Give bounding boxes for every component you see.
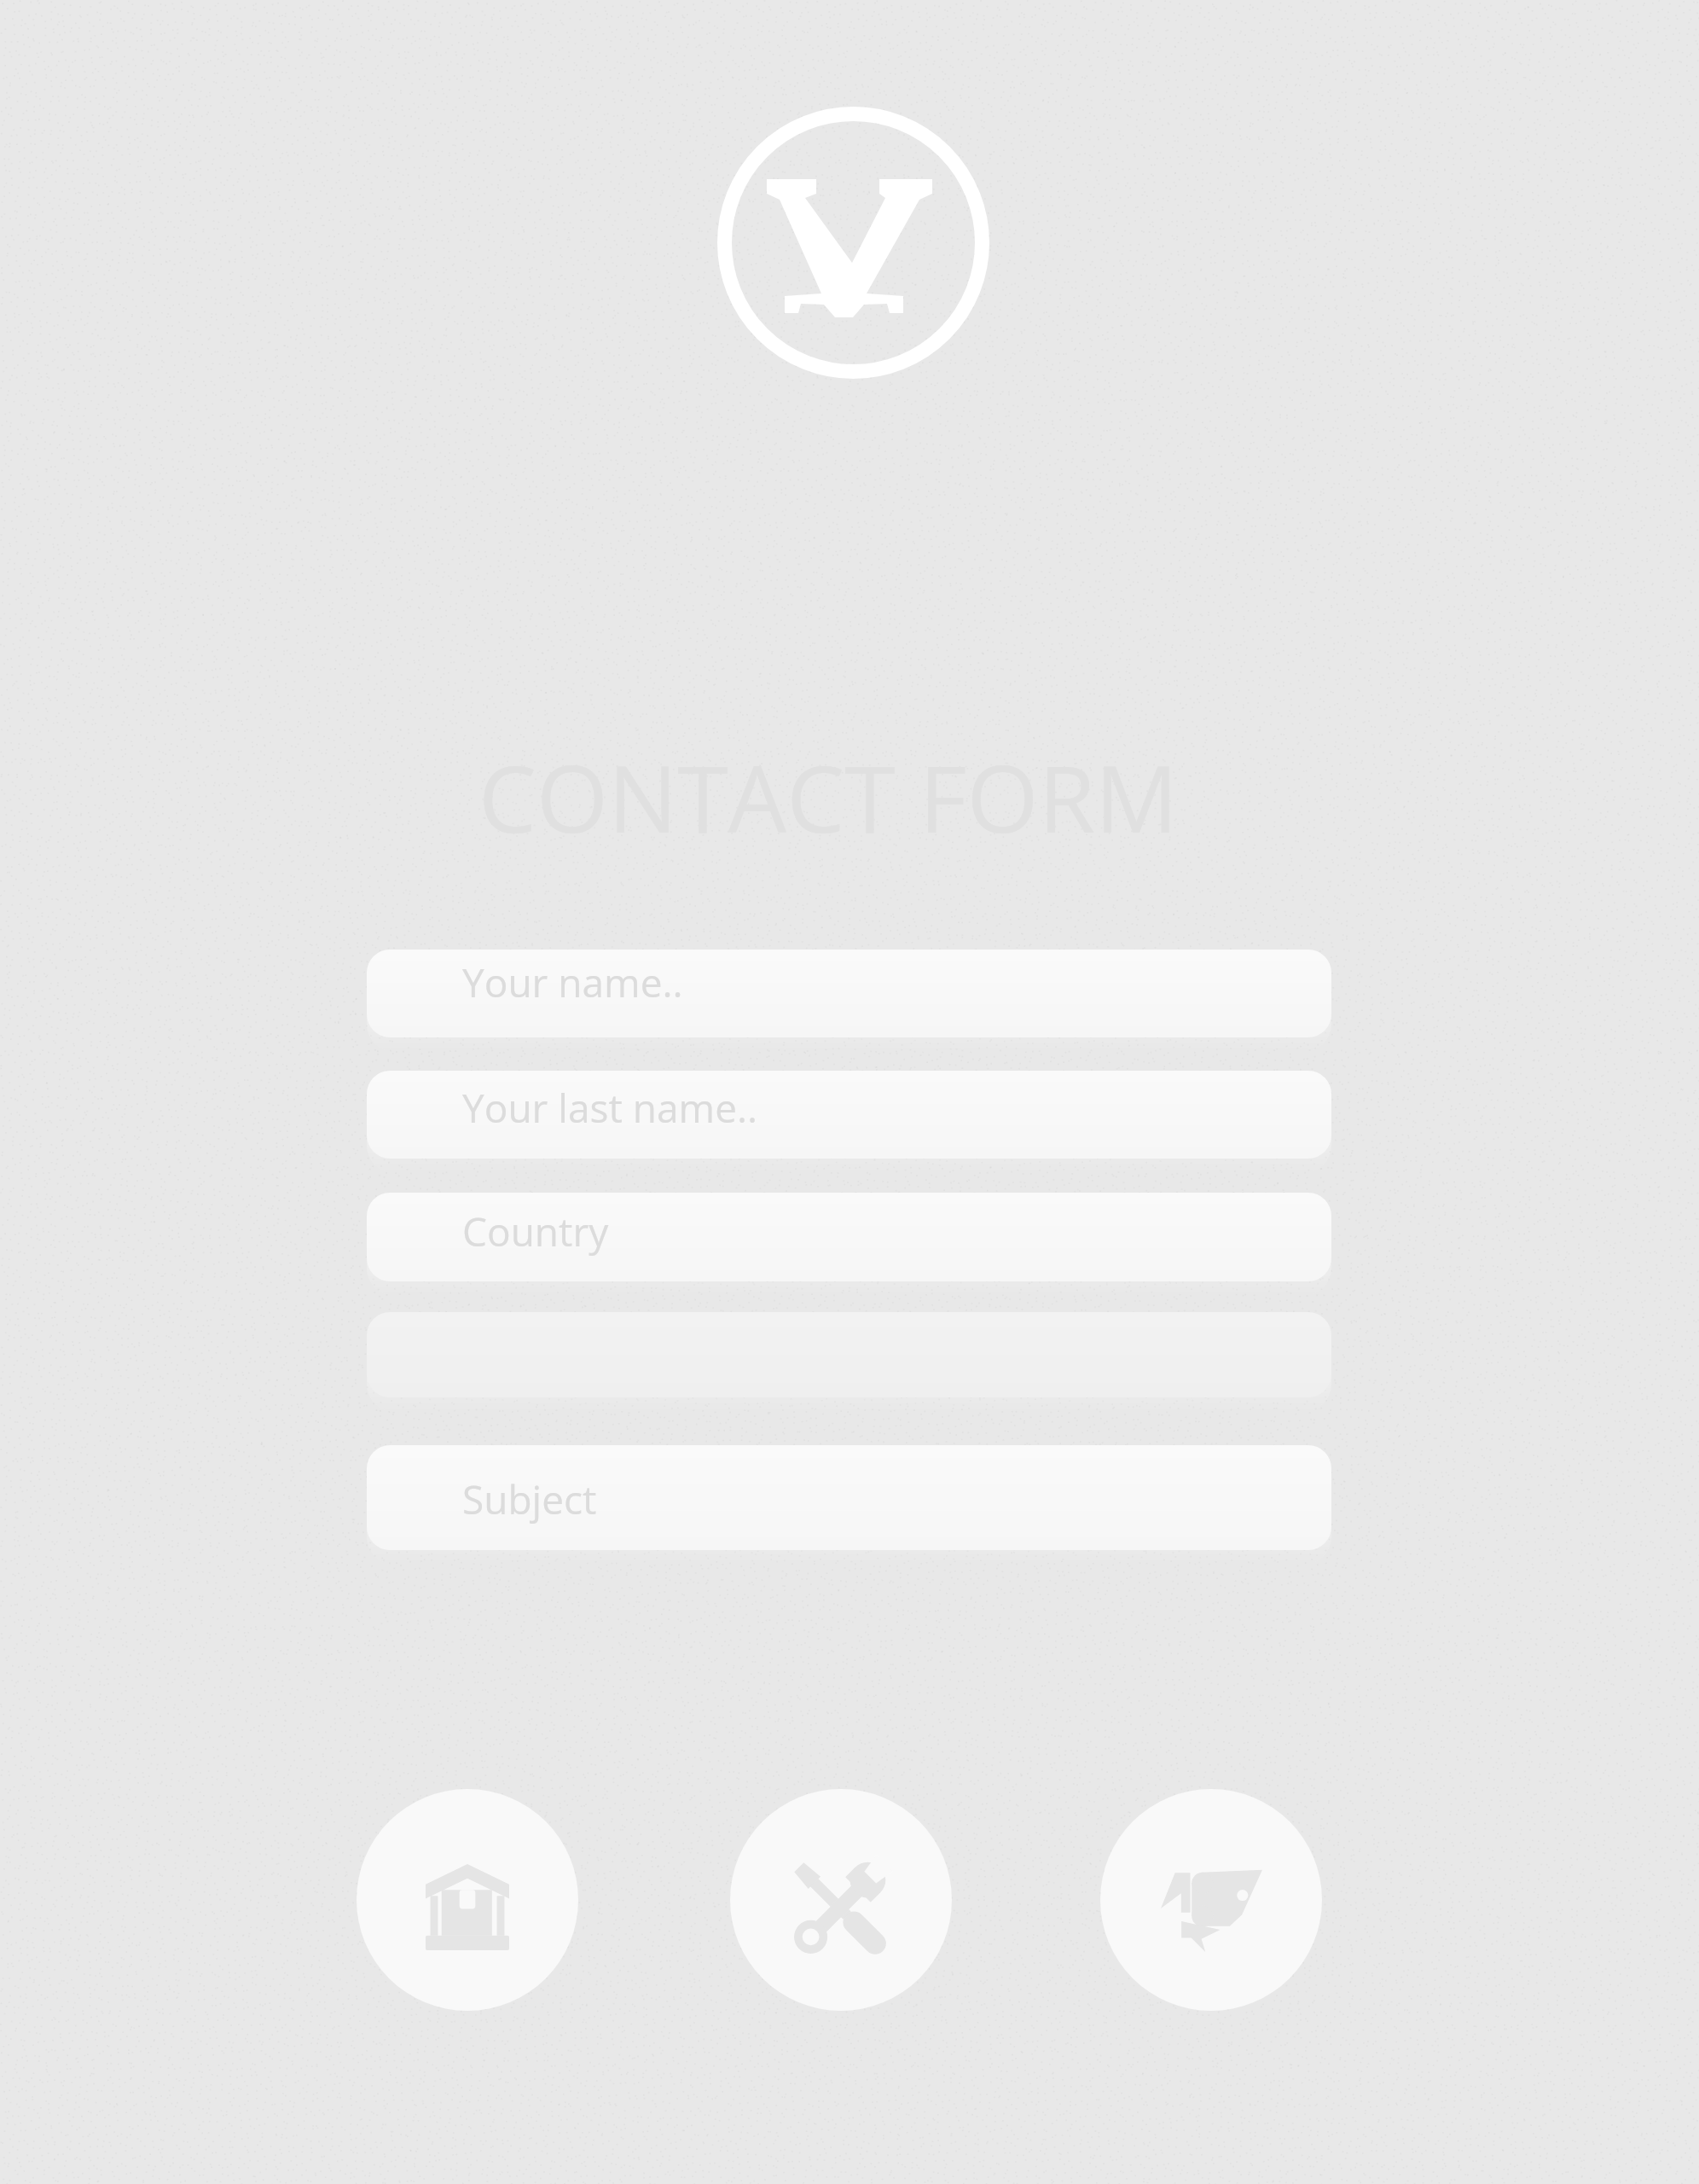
- staticText: Your name..: [462, 955, 683, 1009]
- staticText: Your last name..: [462, 1081, 758, 1135]
- button[interactable]: Contact: [1100, 1789, 1322, 2011]
- staticText: Country: [462, 1205, 609, 1258]
- staticText: Subject: [462, 1472, 597, 1526]
- button[interactable]: Home: [357, 1789, 578, 2011]
- button[interactable]: Your name..: [367, 950, 1331, 1037]
- button[interactable]: Subject: [367, 1445, 1331, 1550]
- button[interactable]: Services: [730, 1789, 952, 2011]
- button[interactable]: Logo: [717, 107, 989, 379]
- button[interactable]: Your last name..: [367, 1071, 1331, 1159]
- button[interactable]: Country: [367, 1193, 1331, 1281]
